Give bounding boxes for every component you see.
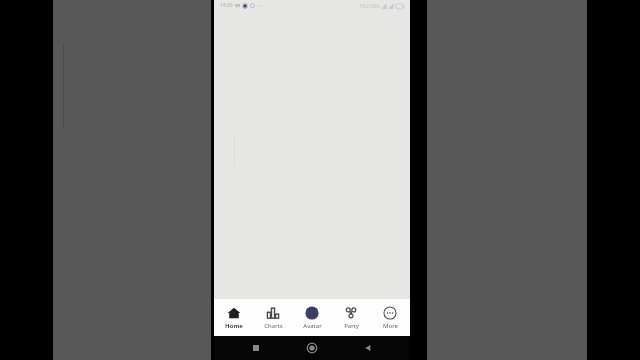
staticText: More (383, 322, 398, 330)
button[interactable]: Home (215, 299, 253, 336)
button[interactable]: Avatar (293, 299, 331, 336)
staticText: ··· (257, 2, 262, 9)
button[interactable]: Party (332, 299, 370, 336)
button[interactable]: Back (360, 340, 376, 356)
staticText: Party (344, 322, 359, 330)
button[interactable]: Home (304, 340, 320, 356)
staticText: Home (225, 322, 243, 330)
staticText: Avatar (303, 322, 322, 330)
staticText: 54.2 KB/s (360, 3, 380, 9)
staticText: Charts (264, 322, 283, 330)
staticText: 14:26 (220, 2, 233, 9)
button[interactable]: More (371, 299, 409, 336)
button[interactable]: Charts (254, 299, 292, 336)
button[interactable]: Recents (248, 340, 264, 356)
